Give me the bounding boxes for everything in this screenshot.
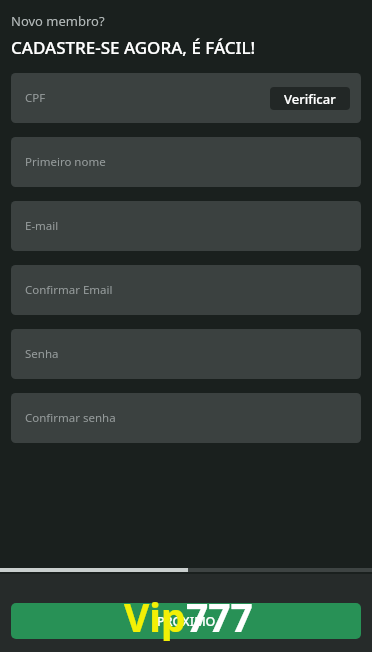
- staticText: Verificar: [284, 90, 336, 108]
- button[interactable]: Primeiro nome: [11, 137, 361, 187]
- staticText: Senha: [25, 346, 59, 362]
- staticText: Novo membro?: [11, 12, 105, 30]
- staticText: CPF: [25, 90, 46, 106]
- staticText: 777: [186, 590, 253, 643]
- staticText: Confirmar senha: [25, 410, 116, 426]
- button[interactable]: PRÓXIMO: [11, 603, 361, 639]
- button[interactable]: Confirmar Email: [11, 265, 361, 315]
- button[interactable]: Confirmar senha: [11, 393, 361, 443]
- staticText: Confirmar Email: [25, 282, 113, 298]
- button[interactable]: CPF: [11, 73, 361, 123]
- staticText: Vip: [124, 590, 186, 643]
- staticText: PRÓXIMO: [157, 613, 216, 630]
- button[interactable]: E-mail: [11, 201, 361, 251]
- staticText: E-mail: [25, 218, 59, 234]
- button[interactable]: Verificar: [270, 87, 350, 110]
- staticText: CADASTRE-SE AGORA, É FÁCIL!: [11, 36, 256, 59]
- staticText: Primeiro nome: [25, 154, 106, 170]
- button[interactable]: Senha: [11, 329, 361, 379]
